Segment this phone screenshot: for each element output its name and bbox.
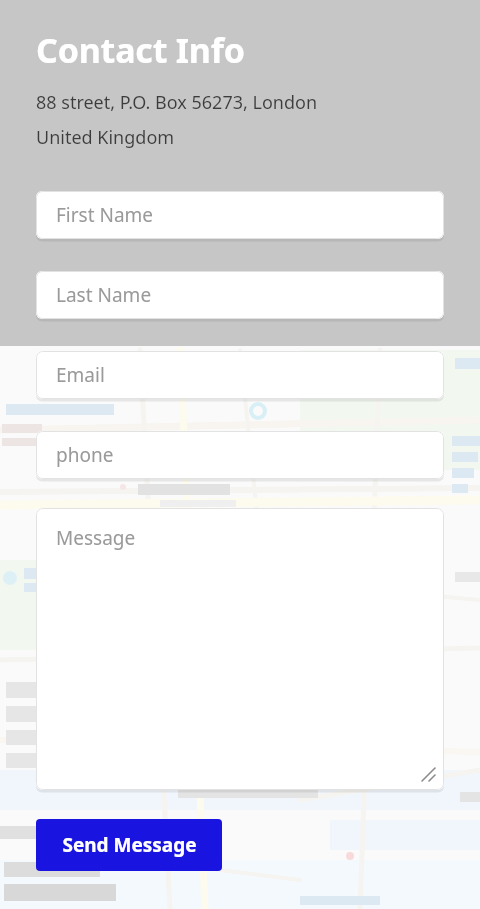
staticText: Send Message xyxy=(62,832,197,858)
button[interactable]: Send Message xyxy=(36,819,222,871)
staticText: Email xyxy=(56,362,105,388)
button[interactable]: Message xyxy=(36,508,444,790)
button[interactable]: First Name xyxy=(36,191,444,239)
staticText: First Name xyxy=(56,202,154,228)
staticText: Last Name xyxy=(56,282,152,308)
staticText: Message xyxy=(56,525,136,551)
staticText: Contact Info xyxy=(36,27,245,73)
button[interactable]: phone xyxy=(36,431,444,479)
button[interactable]: Last Name xyxy=(36,271,444,319)
button[interactable]: Email xyxy=(36,351,444,399)
staticText: phone xyxy=(56,442,114,468)
staticText: 88 street, P.O. Box 56273, London United… xyxy=(36,90,318,150)
